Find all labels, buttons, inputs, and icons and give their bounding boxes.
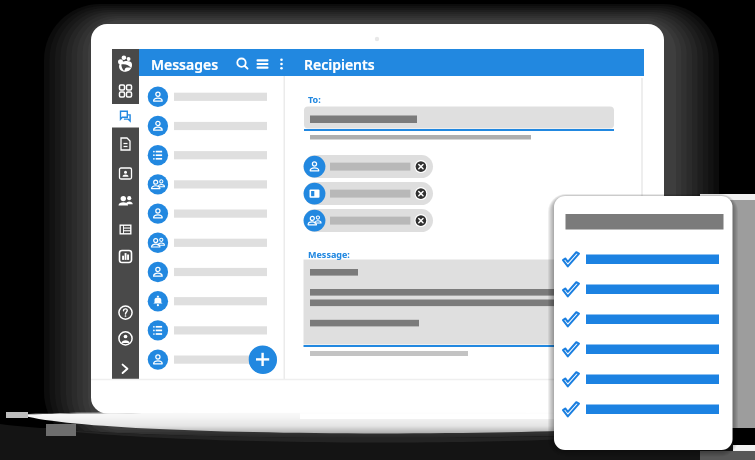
button[interactable]: Message 4 <box>145 170 285 199</box>
staticText: Recipients <box>304 55 375 74</box>
button[interactable]: Menu <box>254 55 271 72</box>
button[interactable]: Message 8 <box>145 287 285 316</box>
staticText: Messages <box>151 55 219 74</box>
button[interactable]: Search <box>234 55 251 72</box>
button[interactable]: Navigation rail <box>112 49 139 380</box>
button[interactable]: Message 10 <box>145 345 285 374</box>
staticText: Message: <box>308 248 350 260</box>
button[interactable]: Message 1 <box>145 82 285 111</box>
button[interactable]: Message 2 <box>145 112 285 141</box>
button[interactable]: Message 5 <box>145 199 285 228</box>
button[interactable]: Message 7 <box>145 258 285 287</box>
button[interactable]: More options <box>274 55 290 71</box>
button[interactable]: Remove recipient 1 <box>414 156 435 177</box>
button[interactable]: Message 9 <box>145 316 285 345</box>
button[interactable]: Message 3 <box>145 141 285 170</box>
staticText: To: <box>308 93 321 105</box>
button[interactable]: Remove recipient 3 <box>414 210 435 231</box>
button[interactable]: Remove recipient 2 <box>414 183 435 204</box>
button[interactable]: Message 6 <box>145 228 285 257</box>
button[interactable]: Compose new message <box>249 346 277 374</box>
